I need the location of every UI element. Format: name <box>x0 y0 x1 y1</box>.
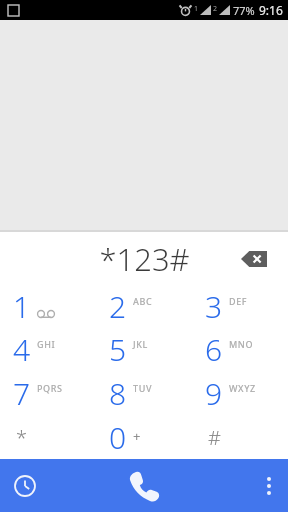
staticText: WXYZ <box>229 382 256 394</box>
button[interactable]: 9 <box>192 371 288 415</box>
staticText: 4 <box>13 329 31 370</box>
staticText: # <box>208 424 221 451</box>
staticText: 8 <box>109 373 127 414</box>
button[interactable]: Call history <box>0 459 96 512</box>
button[interactable]: 0 <box>96 415 192 459</box>
staticText: 5 <box>109 329 127 370</box>
button[interactable]: 2 <box>96 285 192 328</box>
staticText: MNO <box>229 338 254 350</box>
staticText: DEF <box>229 295 248 307</box>
staticText: 2 <box>109 286 127 327</box>
button[interactable]: Backspace <box>234 242 274 276</box>
staticText: 1 <box>13 286 31 327</box>
button[interactable]: Call <box>96 459 192 512</box>
staticText: * <box>16 424 28 451</box>
staticText: 0 <box>109 417 127 458</box>
staticText: 3 <box>205 286 223 327</box>
staticText: PQRS <box>37 382 63 394</box>
staticText: *123# <box>99 238 190 280</box>
staticText: GHI <box>37 338 56 350</box>
button[interactable]: # <box>192 415 288 459</box>
staticText: 6 <box>205 329 223 370</box>
button[interactable]: 3 <box>192 285 288 328</box>
button[interactable]: 5 <box>96 328 192 371</box>
staticText: JKL <box>133 338 148 350</box>
button[interactable]: 4 <box>0 328 96 371</box>
staticText: ABC <box>133 295 153 307</box>
button[interactable]: 7 <box>0 371 96 415</box>
staticText: + <box>133 427 141 445</box>
staticText: 9:16 <box>259 2 283 18</box>
button[interactable]: 8 <box>96 371 192 415</box>
button[interactable]: 6 <box>192 328 288 371</box>
button[interactable]: 1 <box>0 285 96 328</box>
button[interactable]: More options <box>192 459 288 512</box>
staticText: TUV <box>133 382 153 394</box>
button[interactable]: * <box>0 415 96 459</box>
staticText: 1 <box>194 4 199 14</box>
staticText: 2 <box>213 4 218 14</box>
staticText: 7 <box>13 373 31 414</box>
staticText: 9 <box>205 373 223 414</box>
staticText: 77% <box>233 3 255 18</box>
